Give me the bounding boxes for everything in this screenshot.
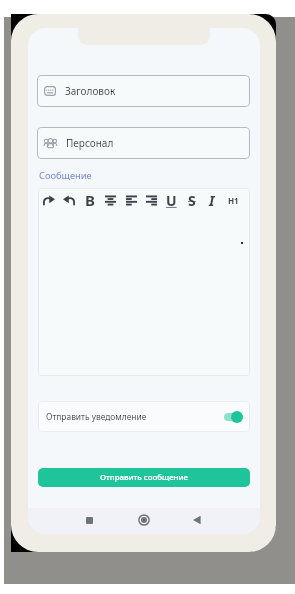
button[interactable]: Italic [202,190,222,210]
button[interactable]: Bold [80,190,100,210]
staticText: S [188,191,196,210]
button[interactable]: Align center [100,190,120,210]
staticText: B [85,190,95,210]
staticText: I [209,191,215,210]
button[interactable]: Redo [39,190,59,210]
staticText: Персонал [66,136,114,150]
button[interactable]: Undo [59,190,79,210]
staticText: Отправить сообщение [100,472,188,483]
button[interactable]: Heading 1 [223,190,243,210]
button[interactable]: Strikethrough [182,190,202,210]
button[interactable]: More [243,190,250,210]
button[interactable]: Отправить уведомление [38,401,250,432]
staticText: Отправить уведомление [46,411,147,422]
button[interactable]: Align right [141,190,161,210]
button[interactable]: Заголовок [37,75,250,107]
staticText: Сообщение [39,169,92,182]
button[interactable]: Underline [161,190,181,210]
staticText: Заголовок [65,84,116,98]
staticText: U [166,191,177,210]
button[interactable]: Персонал [37,127,250,159]
staticText: H1 [228,195,239,206]
button[interactable]: Recents [79,510,99,530]
button[interactable]: Home [134,510,154,530]
button[interactable]: Back [187,510,207,530]
button[interactable]: Отправить сообщение [38,468,250,487]
button[interactable]: Align left [121,190,141,210]
